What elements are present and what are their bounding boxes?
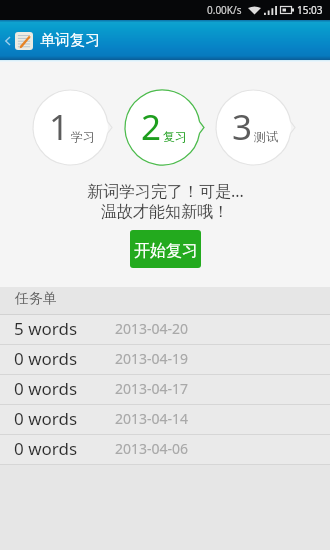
staticText: 测试 bbox=[254, 129, 278, 144]
staticText: 0 words bbox=[14, 347, 78, 370]
staticText: 15:03 bbox=[297, 3, 323, 17]
button[interactable]: 0 words bbox=[0, 345, 330, 375]
staticText: 2013-04-14 bbox=[115, 409, 189, 428]
staticText: 5 words bbox=[14, 317, 78, 340]
staticText: 3 bbox=[232, 103, 253, 151]
button[interactable]: 5 words bbox=[0, 315, 330, 345]
staticText: 任务单 bbox=[15, 290, 57, 308]
staticText: 单词复习 bbox=[40, 31, 100, 50]
staticText: 2013-04-19 bbox=[115, 349, 189, 368]
button[interactable]: 0 words bbox=[0, 405, 330, 435]
button[interactable]: 0 words bbox=[0, 375, 330, 405]
button[interactable]: 开始复习 bbox=[130, 230, 201, 268]
staticText: 0 words bbox=[14, 377, 78, 400]
staticText: 复习 bbox=[163, 129, 187, 144]
staticText: 2 bbox=[141, 103, 162, 151]
staticText: 0.00K/s bbox=[207, 3, 242, 17]
staticText: 1 bbox=[49, 103, 70, 151]
staticText: 2013-04-20 bbox=[115, 319, 189, 338]
button[interactable]: 3 bbox=[215, 89, 298, 166]
staticText: 学习 bbox=[71, 129, 95, 144]
staticText: 2013-04-06 bbox=[115, 439, 189, 458]
button[interactable]: 0 words bbox=[0, 435, 330, 465]
button[interactable]: 2 bbox=[124, 89, 207, 166]
staticText: 0 words bbox=[14, 437, 78, 460]
staticText: 新词学习完了！可是... bbox=[87, 180, 244, 202]
button[interactable]: 1 bbox=[32, 89, 115, 166]
staticText: 2013-04-17 bbox=[115, 379, 189, 398]
staticText: 开始复习 bbox=[134, 241, 198, 261]
staticText: 温故才能知新哦！ bbox=[101, 202, 229, 222]
staticText: 0 words bbox=[14, 407, 78, 430]
button[interactable]: Back bbox=[1, 34, 14, 47]
